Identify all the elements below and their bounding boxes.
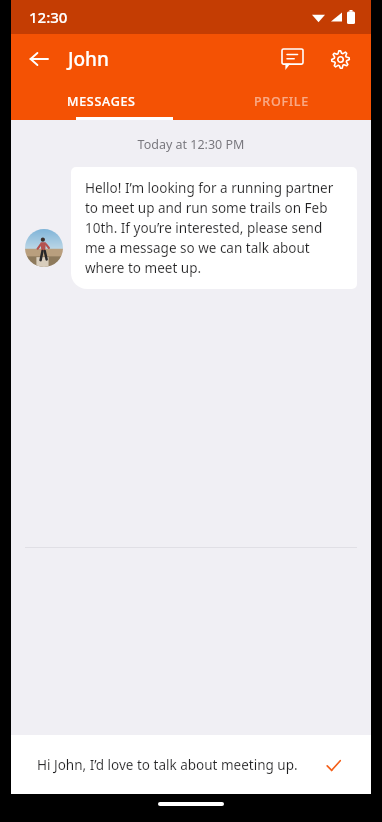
staticText: Today at 12:30 PM	[11, 136, 371, 153]
button[interactable]: PROFILE	[191, 83, 371, 120]
staticText: 12:30	[29, 7, 68, 27]
button[interactable]: MESSAGES	[11, 83, 191, 120]
staticText: MESSAGES	[67, 93, 136, 110]
button[interactable]: Back	[19, 39, 59, 79]
button[interactable]: Hi John, I’d love to talk about meeting …	[25, 748, 357, 781]
button[interactable]: Send	[321, 753, 345, 777]
button[interactable]: Settings	[320, 39, 360, 79]
button[interactable]: Messages	[272, 39, 312, 79]
staticText: Hello! I’m looking for a running partner…	[85, 179, 343, 277]
staticText: John	[68, 46, 109, 72]
staticText: PROFILE	[254, 93, 309, 110]
staticText: Hi John, I’d love to talk about meeting …	[37, 756, 321, 774]
button[interactable]: Avatar	[25, 229, 63, 267]
button[interactable]: Hello! I’m looking for a running partner…	[71, 167, 357, 289]
